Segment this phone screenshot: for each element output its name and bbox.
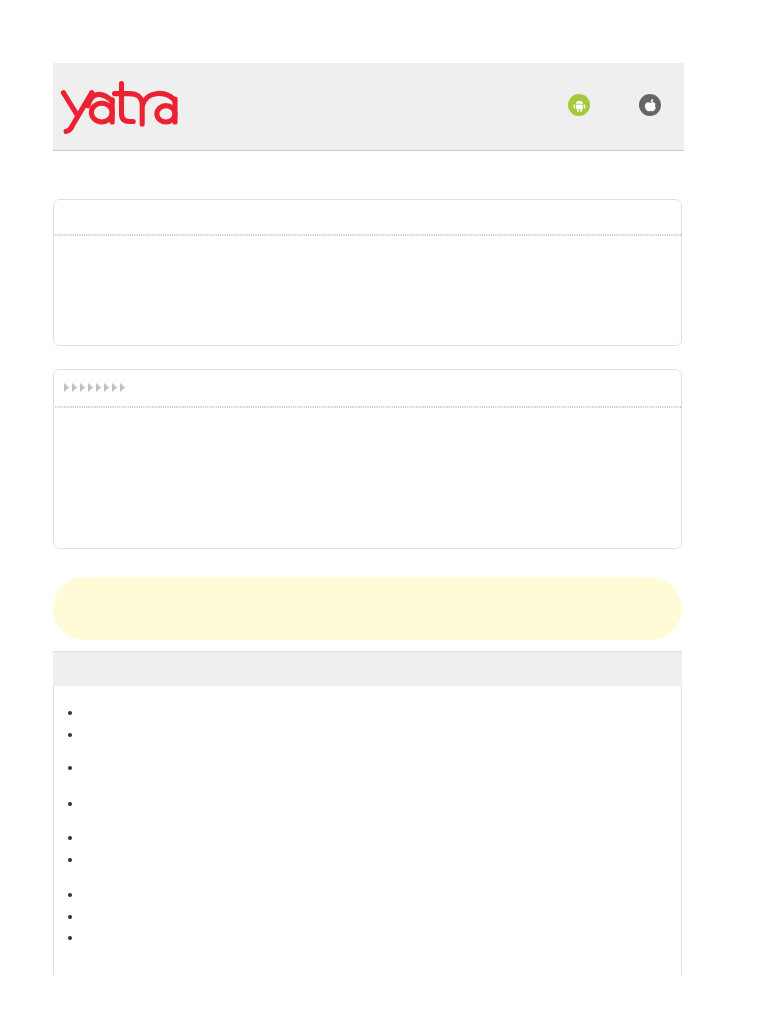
button[interactable]: Android app — [568, 94, 590, 116]
button[interactable]: iOS app — [639, 94, 661, 116]
button[interactable]: Yatra home — [60, 80, 180, 133]
button[interactable] — [53, 577, 682, 640]
